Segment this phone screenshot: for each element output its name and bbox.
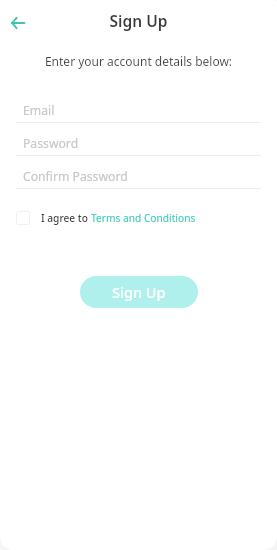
- staticText: Sign Up: [112, 282, 166, 302]
- staticText: Enter your account details below:: [0, 53, 277, 69]
- staticText: Password: [23, 135, 79, 152]
- button[interactable]: I agree to: [16, 211, 196, 225]
- staticText: Confirm Password: [23, 168, 128, 185]
- button[interactable]: Email: [0, 99, 277, 122]
- button[interactable]: Back: [2, 7, 33, 38]
- staticText: I agree to: [41, 211, 91, 225]
- button[interactable]: Sign Up: [80, 276, 198, 308]
- button[interactable]: Confirm Password: [0, 165, 277, 188]
- button[interactable]: Terms and Conditions: [91, 211, 196, 225]
- button[interactable]: Password: [0, 132, 277, 155]
- staticText: Sign Up: [0, 10, 277, 31]
- staticText: Email: [23, 102, 55, 119]
